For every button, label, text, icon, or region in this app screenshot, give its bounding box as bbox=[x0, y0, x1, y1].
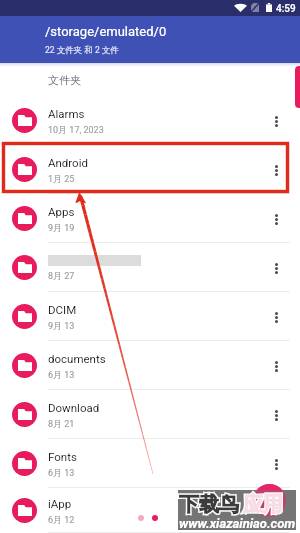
staticText: Android bbox=[48, 156, 88, 169]
staticText: 应用 bbox=[243, 492, 283, 517]
staticText: 6月 13 bbox=[48, 467, 75, 478]
staticText: 下载鸟 bbox=[179, 492, 239, 517]
button[interactable]: Apps bbox=[0, 194, 300, 243]
staticText: 下载鸟 bbox=[179, 492, 239, 517]
staticText: Fonts bbox=[48, 450, 77, 463]
staticText: /storage/emulated/0 bbox=[45, 24, 167, 39]
button[interactable]: DCIM bbox=[0, 292, 300, 341]
button[interactable]: More options bbox=[261, 244, 291, 292]
button[interactable]: More options bbox=[261, 488, 291, 533]
button[interactable]: documents bbox=[0, 341, 300, 390]
staticText: documents bbox=[48, 352, 106, 365]
staticText: 22 文件夹 和 2 文件 bbox=[45, 45, 119, 56]
staticText: 6月 13 bbox=[48, 369, 75, 380]
staticText: 1月 25 bbox=[48, 173, 75, 184]
button[interactable]: Side panel bbox=[295, 66, 300, 108]
staticText: 10月 17, 2023 bbox=[48, 124, 104, 135]
button[interactable]: More options bbox=[261, 391, 291, 439]
staticText: 9月 13 bbox=[48, 320, 75, 331]
staticText: iApp bbox=[48, 497, 72, 510]
button[interactable]: More options bbox=[261, 195, 291, 243]
staticText: Alarms bbox=[48, 107, 85, 120]
staticText: 9月 19 bbox=[48, 222, 75, 233]
staticText: 4:59 bbox=[276, 3, 296, 15]
button[interactable]: iApp bbox=[0, 488, 300, 533]
staticText: 8月 21 bbox=[48, 418, 75, 429]
button[interactable]: 8月 27 bbox=[0, 243, 300, 292]
button[interactable]: Alarms bbox=[0, 96, 300, 145]
button[interactable]: More options bbox=[261, 97, 291, 145]
button[interactable]: More options bbox=[261, 293, 291, 341]
staticText: 8月 27 bbox=[48, 270, 75, 281]
button[interactable]: Download bbox=[0, 390, 300, 439]
button[interactable]: More options bbox=[261, 146, 291, 194]
button[interactable]: More options bbox=[261, 342, 291, 390]
button[interactable]: Android bbox=[0, 145, 300, 194]
staticText: DCIM bbox=[48, 303, 77, 316]
staticText: 应用 bbox=[243, 492, 283, 517]
button[interactable]: More options bbox=[261, 440, 291, 488]
staticText: Apps bbox=[48, 205, 75, 218]
staticText: 6月 12 bbox=[48, 514, 75, 525]
staticText: Download bbox=[48, 401, 100, 414]
staticText: 文件夹 bbox=[48, 73, 81, 87]
staticText: www.xiazainiao.com bbox=[179, 516, 296, 531]
button[interactable]: Fonts bbox=[0, 439, 300, 488]
